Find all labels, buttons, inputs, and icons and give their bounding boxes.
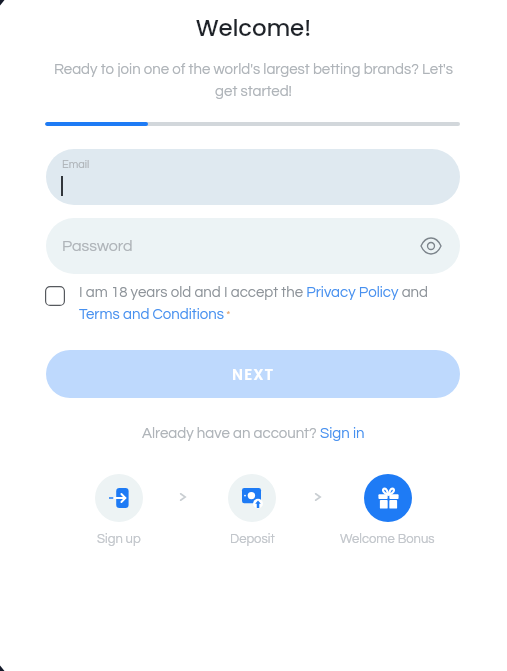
button[interactable]: NEXT bbox=[46, 350, 460, 398]
staticText: Welcome! bbox=[0, 12, 507, 44]
staticText: Sign up bbox=[97, 532, 141, 545]
button[interactable]: Email bbox=[46, 149, 460, 205]
staticText: Deposit bbox=[230, 532, 275, 545]
button[interactable]: Deposit bbox=[188, 474, 316, 545]
staticText: I am 18 years old and I accept the Priva… bbox=[79, 285, 449, 322]
button[interactable]: Sign up bbox=[55, 474, 183, 545]
staticText: Email bbox=[62, 159, 90, 170]
staticText: Already have an account? bbox=[142, 426, 320, 441]
staticText: Ready to join one of the world's largest… bbox=[48, 62, 459, 99]
button[interactable]: Sign in bbox=[320, 426, 365, 441]
button[interactable]: Password bbox=[46, 218, 460, 274]
button[interactable]: Accept terms and conditions bbox=[45, 286, 65, 306]
button[interactable]: Welcome Bonus bbox=[323, 474, 451, 545]
staticText: NEXT bbox=[232, 364, 275, 385]
button[interactable]: Show password bbox=[415, 230, 447, 262]
staticText: Welcome Bonus bbox=[340, 532, 435, 545]
staticText: Password bbox=[62, 238, 133, 254]
